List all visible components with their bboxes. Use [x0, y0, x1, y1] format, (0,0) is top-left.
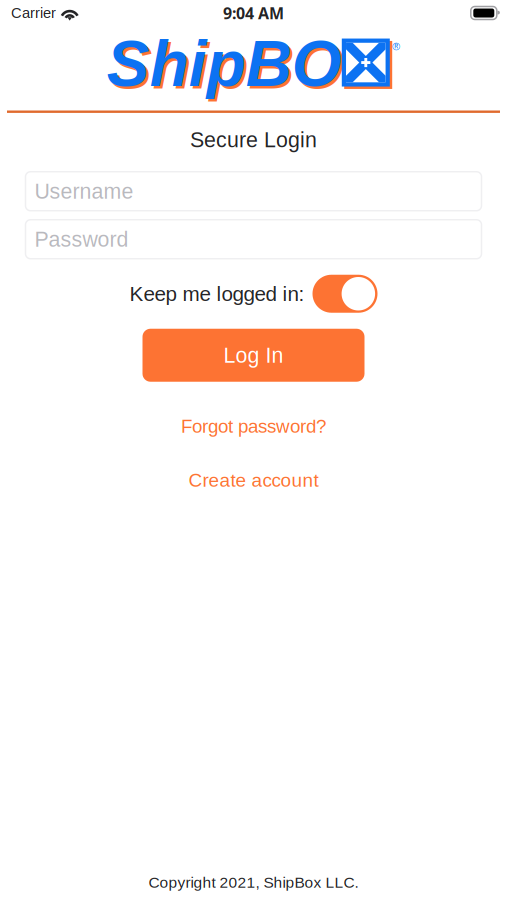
- staticText: 9:04 AM: [223, 2, 284, 24]
- button[interactable]: Log In: [142, 329, 364, 382]
- staticText: Log In: [223, 343, 283, 367]
- button[interactable]: Create account: [178, 465, 328, 496]
- staticText: ShipBO: [107, 28, 342, 99]
- staticText: Create account: [188, 470, 318, 491]
- staticText: Carrier: [11, 5, 56, 21]
- staticText: Copyright 2021, ShipBox LLC.: [148, 874, 358, 891]
- staticText: ShipBO: [109, 31, 344, 102]
- staticText: Password: [34, 227, 128, 251]
- staticText: ®: [392, 41, 400, 53]
- button[interactable]: Keep me logged in: [312, 275, 377, 313]
- staticText: Keep me logged in:: [129, 282, 304, 305]
- button[interactable]: Forgot password?: [171, 411, 336, 442]
- staticText: Secure Login: [190, 128, 317, 152]
- staticText: Username: [34, 179, 133, 203]
- staticText: Forgot password?: [181, 416, 326, 437]
- button[interactable]: Username: [25, 172, 481, 211]
- button[interactable]: Password: [25, 220, 481, 259]
